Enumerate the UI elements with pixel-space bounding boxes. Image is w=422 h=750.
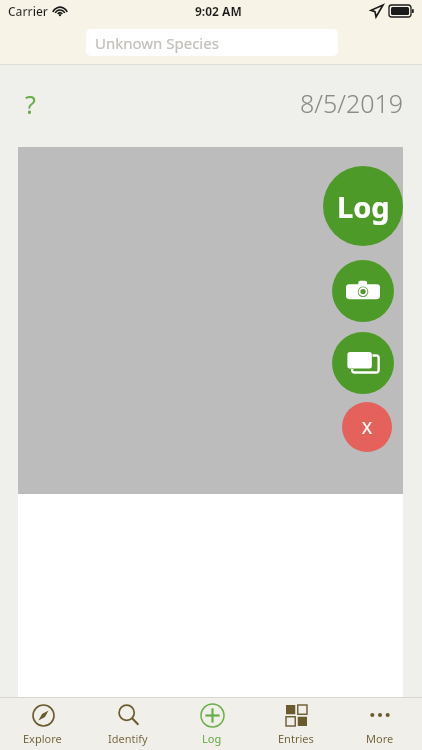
staticText: Entries (278, 731, 314, 746)
button[interactable]: Log (170, 698, 254, 750)
staticText: More (366, 731, 394, 746)
staticText: 8/5/2019 (300, 86, 404, 120)
button[interactable]: More (338, 698, 422, 750)
button[interactable]: Explore (0, 698, 85, 750)
staticText: Carrier (8, 3, 48, 19)
staticText: Unknown Species (95, 33, 219, 53)
staticText: ? (25, 87, 36, 119)
button[interactable]: Entries (254, 698, 338, 750)
button[interactable]: Take photo (332, 260, 394, 322)
staticText: 9:02 AM (195, 3, 242, 19)
button[interactable]: Help (14, 87, 46, 119)
button[interactable]: Log (323, 166, 403, 246)
staticText: Log (202, 731, 222, 746)
button[interactable]: Choose from gallery (332, 332, 394, 394)
button[interactable]: Unknown Species (86, 29, 338, 56)
button[interactable]: Close (342, 402, 392, 452)
staticText: X (362, 416, 372, 439)
staticText: Identify (108, 731, 148, 746)
staticText: Log (337, 187, 390, 226)
staticText: Explore (23, 731, 62, 746)
button[interactable]: Identify (85, 698, 170, 750)
